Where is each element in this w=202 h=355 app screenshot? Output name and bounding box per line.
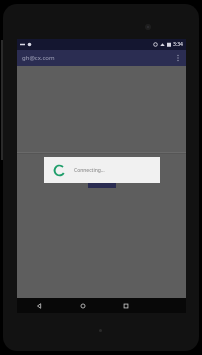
button[interactable]: More options	[172, 52, 184, 64]
button[interactable]: Recent apps	[104, 298, 147, 313]
button[interactable]	[88, 180, 116, 188]
staticText: gh@cx.com	[22, 54, 55, 62]
staticText: 3:34	[173, 41, 183, 48]
button[interactable]: Home	[61, 298, 104, 313]
staticText: Connecting…	[74, 167, 105, 174]
button[interactable]: Back	[17, 298, 61, 313]
